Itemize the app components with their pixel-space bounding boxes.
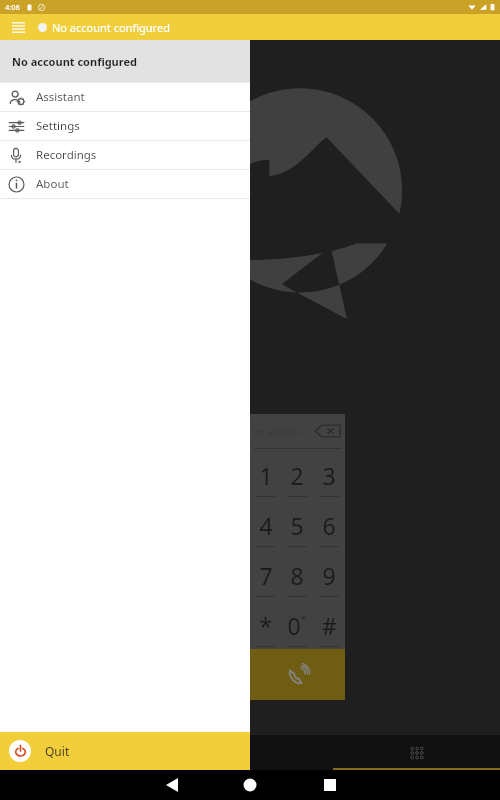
button[interactable]: 7	[250, 549, 281, 599]
staticText: 0	[287, 610, 301, 641]
staticText: Assistant	[36, 89, 85, 105]
staticText: 4:08	[5, 2, 20, 12]
button[interactable]: 1	[250, 449, 281, 499]
staticText: 4	[259, 510, 273, 541]
staticText: #	[322, 610, 337, 641]
button[interactable]: Settings	[0, 112, 250, 140]
button[interactable]: 5	[281, 499, 313, 549]
button[interactable]: Recordings	[0, 141, 250, 169]
staticText: About	[36, 176, 69, 192]
button[interactable]: Call	[250, 649, 345, 700]
button[interactable]: Erase	[315, 424, 341, 438]
staticText: +	[301, 610, 307, 624]
button[interactable]: *	[250, 599, 281, 649]
button[interactable]: Open navigation drawer	[8, 17, 28, 37]
staticText: 7	[259, 560, 273, 591]
button[interactable]: 4	[250, 499, 281, 549]
staticText: Settings	[36, 118, 80, 134]
button[interactable]: 2	[281, 449, 313, 499]
button[interactable]: #	[313, 599, 345, 649]
staticText: No account configured	[52, 20, 170, 35]
staticText: 9	[322, 560, 336, 591]
staticText: No account configured	[12, 54, 137, 69]
staticText: 6	[322, 510, 336, 541]
button[interactable]: 6	[313, 499, 345, 549]
button[interactable]: Quit	[0, 732, 250, 770]
staticText: 5	[290, 510, 304, 541]
staticText: Quit	[45, 743, 70, 759]
button[interactable]: 3	[313, 449, 345, 499]
staticText: 2	[290, 460, 304, 491]
button[interactable]: Contacts	[0, 735, 166, 770]
staticText: Recordings	[36, 147, 97, 163]
button[interactable]: 9	[313, 549, 345, 599]
staticText: 3	[322, 460, 336, 491]
button[interactable]: 0	[281, 599, 313, 649]
button[interactable]: Dialer	[333, 735, 500, 770]
button[interactable]: No account configured	[0, 40, 250, 82]
button[interactable]: Assistant	[0, 83, 250, 111]
staticText: 1	[259, 460, 273, 491]
button[interactable]: About	[0, 170, 250, 198]
staticText: 8	[290, 560, 304, 591]
button[interactable]: 8	[281, 549, 313, 599]
staticText: *	[259, 610, 272, 641]
button[interactable]: History	[166, 735, 333, 770]
